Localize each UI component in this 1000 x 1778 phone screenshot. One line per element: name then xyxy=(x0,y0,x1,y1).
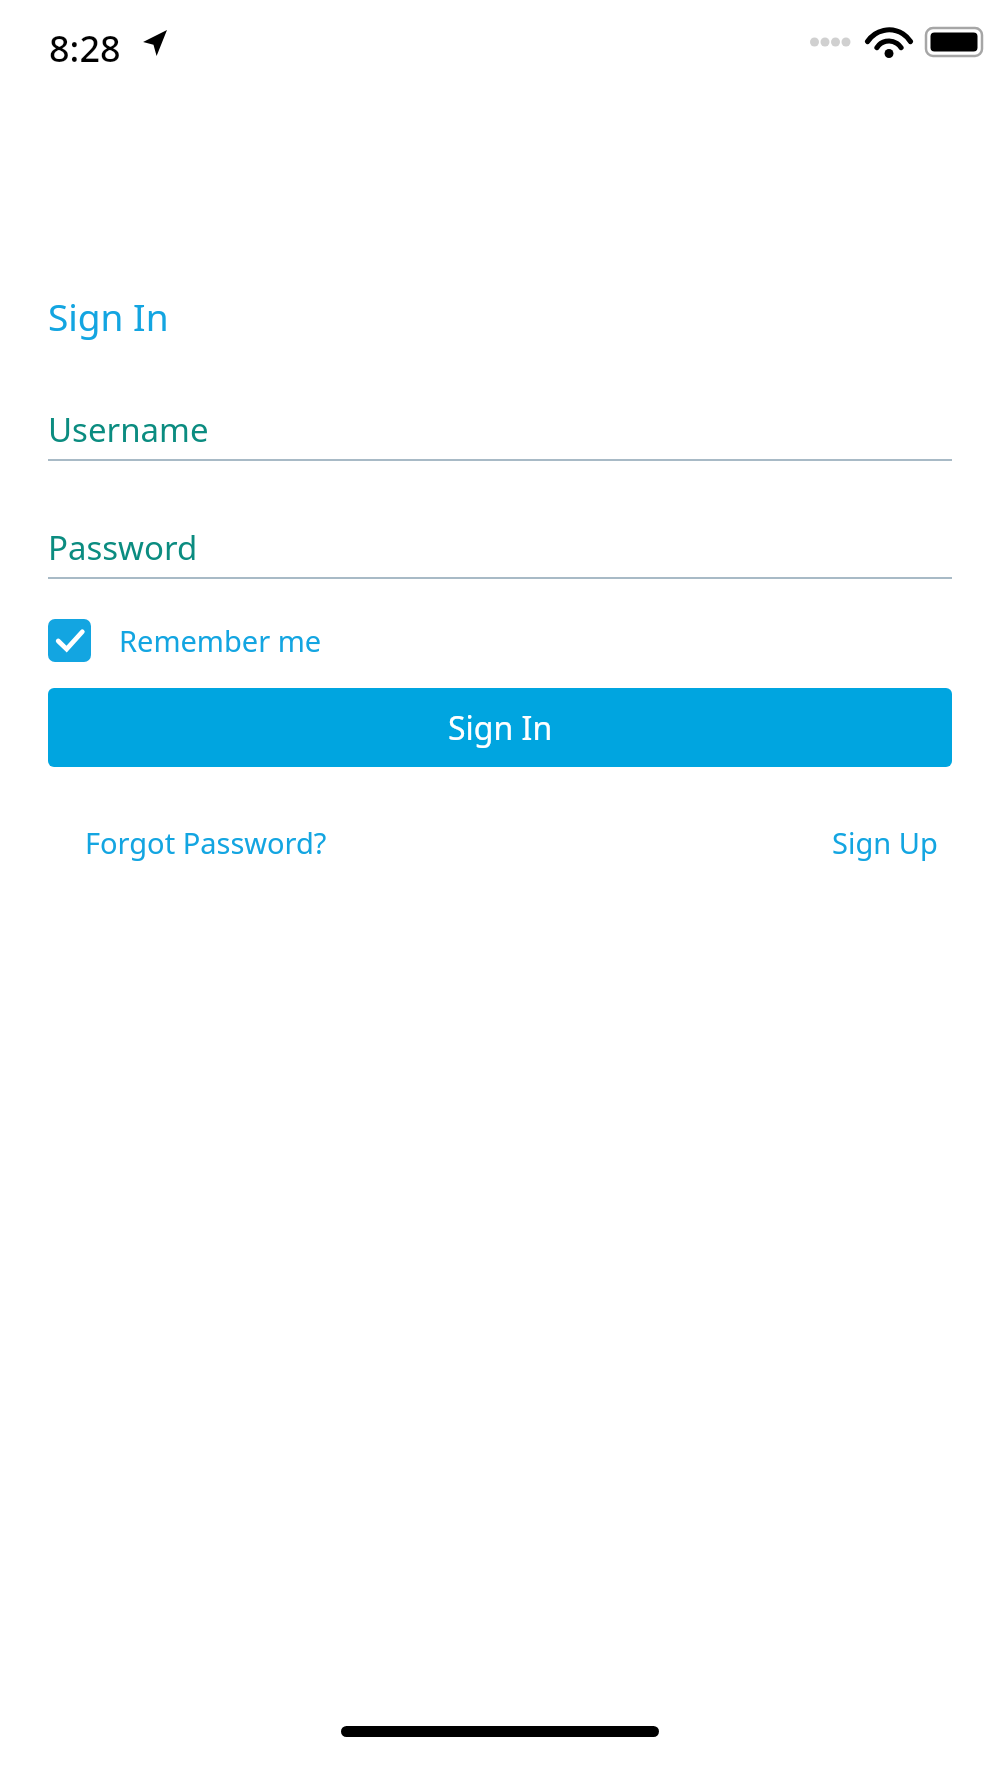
button[interactable]: Username xyxy=(48,407,952,461)
button[interactable]: Sign In xyxy=(48,688,952,767)
button[interactable]: Password xyxy=(48,525,952,579)
button[interactable]: Forgot Password? xyxy=(48,815,364,870)
staticText: Remember me xyxy=(119,621,322,660)
button[interactable]: Sign Up xyxy=(818,815,952,870)
staticText: Sign In xyxy=(448,706,553,750)
button[interactable]: Remember me checkbox, checked xyxy=(48,617,322,664)
other: Remember me checkbox, checked xyxy=(48,619,91,662)
staticText: Sign Up xyxy=(832,823,938,862)
staticText: 8:28 xyxy=(49,24,121,73)
staticText: Sign In xyxy=(48,291,169,341)
staticText: Forgot Password? xyxy=(85,823,327,862)
staticText: Password xyxy=(48,525,198,570)
staticText: Username xyxy=(48,407,209,452)
